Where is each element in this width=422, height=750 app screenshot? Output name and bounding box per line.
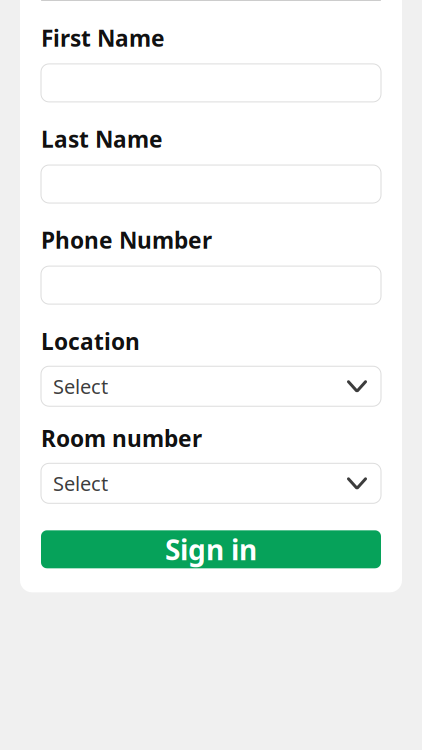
staticText: Last Name [41,124,163,154]
button[interactable]: Sign in [41,530,381,568]
staticText: First Name [41,23,165,53]
staticText: Phone Number [41,225,212,255]
staticText: Room number [41,423,202,453]
button[interactable]: Select [41,366,381,406]
button[interactable]: Select [41,463,381,503]
staticText: Sign in [165,531,257,568]
staticText: Location [41,326,140,356]
staticText: Select [53,470,108,497]
staticText: Select [53,373,108,399]
